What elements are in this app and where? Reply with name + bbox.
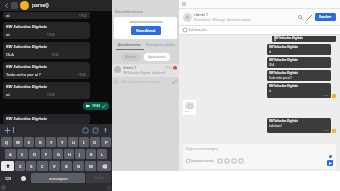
button[interactable]: Attach bbox=[224, 158, 230, 164]
button[interactable]: RW Solucões Digitais bbox=[3, 62, 90, 79]
button[interactable]: Aguardando bbox=[144, 53, 170, 61]
staticText: foto bbox=[185, 110, 190, 113]
button[interactable]: enviar bbox=[86, 173, 111, 183]
button[interactable]: Z bbox=[15, 161, 25, 171]
staticText: D bbox=[33, 152, 36, 157]
staticText: parse() bbox=[32, 2, 49, 9]
button[interactable]: RW Solucões Digitais bbox=[267, 118, 331, 133]
staticText: RW Solucões Digitais bbox=[269, 84, 298, 88]
button[interactable]: N bbox=[73, 161, 84, 171]
staticText: V bbox=[53, 164, 56, 169]
button[interactable]: F bbox=[41, 149, 52, 159]
button[interactable]: RW Solucões Digitais bbox=[272, 36, 336, 42]
button[interactable]: U bbox=[68, 137, 78, 147]
button[interactable]: Send bbox=[327, 160, 333, 166]
button[interactable]: Abertos bbox=[121, 53, 141, 61]
button[interactable]: A bbox=[5, 149, 16, 159]
staticText: 19:32 bbox=[78, 73, 86, 77]
staticText: RW Solucões Digitais bbox=[269, 119, 298, 123]
staticText: U bbox=[72, 140, 75, 145]
staticText: 123 bbox=[5, 176, 12, 181]
staticText: RW Solucões Digitais bbox=[274, 36, 303, 40]
staticText: Aguardando bbox=[148, 55, 166, 59]
button[interactable]: Q bbox=[1, 137, 12, 147]
button[interactable]: Mensagens rápidas bbox=[145, 43, 177, 50]
button[interactable]: RW Solucões Digitais bbox=[267, 70, 331, 81]
staticText: RW Solucões Digitais bbox=[269, 58, 298, 62]
staticText: 19:33 bbox=[165, 66, 172, 70]
button[interactable]: P bbox=[101, 137, 111, 147]
button[interactable]: RW Solucões Digitais bbox=[3, 114, 90, 124]
button[interactable]: W bbox=[13, 137, 23, 147]
button[interactable]: G bbox=[53, 149, 63, 159]
staticText: oi bbox=[269, 89, 272, 93]
button[interactable]: Resolver bbox=[315, 13, 336, 21]
staticText: X bbox=[30, 164, 33, 169]
staticText: 19:32 bbox=[51, 53, 59, 57]
button[interactable]: L bbox=[97, 149, 107, 159]
button[interactable]: RW Solucões Digitais bbox=[267, 83, 331, 98]
button[interactable]: 19:33 bbox=[83, 102, 109, 110]
staticText: OLA bbox=[269, 63, 275, 67]
button[interactable]: RW Solucões Digitais bbox=[3, 82, 90, 99]
button[interactable]: RW Solucões Digitais bbox=[3, 42, 90, 59]
staticText: A bbox=[9, 152, 12, 157]
button[interactable]: B bbox=[61, 161, 72, 171]
staticText: RW Solucões Digitais bbox=[6, 64, 48, 70]
button[interactable]: Emoji bbox=[91, 126, 99, 134]
button[interactable]: RW Solucões Digitais bbox=[267, 44, 331, 55]
staticText: L bbox=[101, 152, 104, 157]
button[interactable]: E bbox=[24, 137, 34, 147]
staticText: H bbox=[68, 152, 71, 157]
staticText: RW Solucões Digitais bbox=[6, 84, 48, 90]
button[interactable]: V bbox=[49, 161, 60, 171]
staticText: 19:32 bbox=[47, 33, 55, 37]
staticText: O bbox=[93, 140, 97, 145]
staticText: K bbox=[90, 152, 93, 157]
staticText: T bbox=[50, 140, 53, 145]
button[interactable]: X bbox=[26, 161, 36, 171]
button[interactable]: Sticker bbox=[81, 126, 89, 134]
button[interactable]: H bbox=[64, 149, 74, 159]
button[interactable]: Shift bbox=[1, 161, 14, 171]
staticText: Atendimentos bbox=[118, 43, 141, 47]
button[interactable]: Search bbox=[296, 13, 304, 21]
button[interactable]: I bbox=[79, 137, 89, 147]
button[interactable]: Edit bbox=[305, 13, 313, 21]
button[interactable]: mensagem bbox=[31, 173, 85, 183]
staticText: RW Solucões Digitais bbox=[269, 71, 298, 75]
button[interactable]: cliente 1 bbox=[112, 64, 179, 77]
button[interactable]: RW Solucões Digitais bbox=[267, 57, 331, 68]
button[interactable]: Add bbox=[3, 126, 11, 134]
staticText: RW Solucões Digitais bbox=[6, 116, 48, 122]
button[interactable]: Backspace bbox=[97, 161, 111, 171]
button[interactable]: RW Solucões Digitais bbox=[3, 22, 90, 39]
button[interactable]: foto bbox=[183, 100, 196, 115]
button[interactable]: Não - Atendimento em espera bbox=[112, 77, 179, 86]
staticText: B bbox=[65, 164, 68, 169]
staticText: Assinatura ativada bbox=[191, 159, 214, 163]
staticText: P bbox=[105, 140, 108, 145]
button[interactable]: Novo Atend. bbox=[131, 26, 161, 35]
button[interactable]: J bbox=[75, 149, 85, 159]
button[interactable]: M bbox=[85, 161, 96, 171]
button[interactable]: Emoji bbox=[217, 158, 223, 164]
button[interactable]: Y bbox=[57, 137, 67, 147]
button[interactable]: T bbox=[46, 137, 56, 147]
button[interactable]: 123 bbox=[1, 173, 16, 183]
button[interactable]: C bbox=[37, 161, 48, 171]
button[interactable]: Atendimentos bbox=[114, 43, 145, 50]
button[interactable]: Mic bbox=[238, 158, 244, 164]
button[interactable]: R bbox=[35, 137, 45, 147]
button[interactable]: S bbox=[17, 149, 28, 159]
button[interactable]: Voice input bbox=[101, 126, 109, 134]
button[interactable]: O bbox=[90, 137, 100, 147]
button[interactable]: K bbox=[86, 149, 96, 159]
button[interactable]: Emoji keyboard bbox=[17, 173, 30, 183]
button[interactable]: Gallery bbox=[231, 158, 237, 164]
button[interactable]: Back bbox=[2, 1, 11, 10]
staticText: Mensagens rápidas bbox=[146, 43, 176, 47]
button[interactable]: oi bbox=[3, 12, 90, 19]
button[interactable]: D bbox=[29, 149, 40, 159]
